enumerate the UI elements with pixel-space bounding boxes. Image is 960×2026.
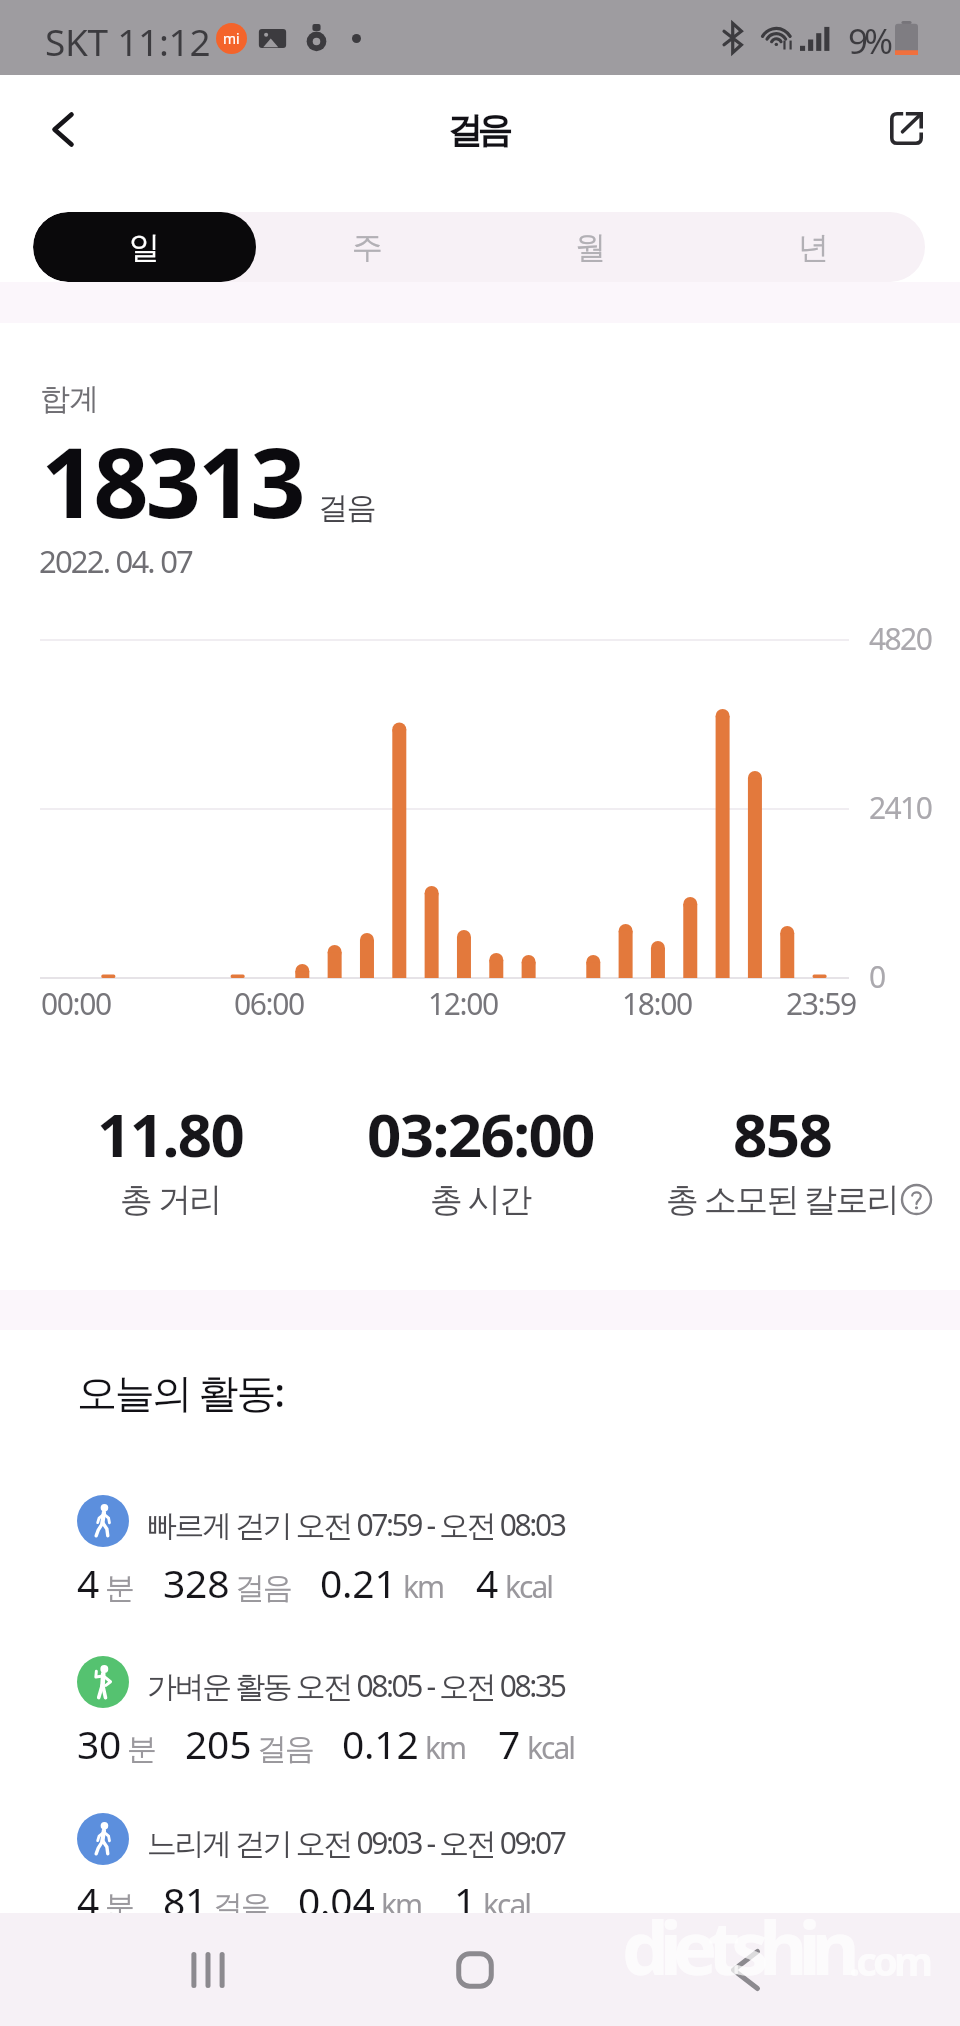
button[interactable]: Recent apps — [148, 1928, 268, 2012]
staticText: 03:26:00 — [367, 1093, 594, 1175]
staticText: 월 — [575, 228, 606, 267]
staticText: 0.21 — [320, 1556, 397, 1609]
staticText: 81 — [163, 1874, 208, 1927]
staticText: 걸음 — [450, 108, 510, 152]
staticText: 오늘의 활동: — [77, 1364, 283, 1419]
staticText: 328 — [163, 1556, 230, 1609]
button[interactable]: 일 — [33, 212, 256, 282]
staticText: 0.12 — [342, 1717, 419, 1770]
staticText: 9% — [848, 17, 890, 65]
staticText: 205 — [185, 1717, 252, 1770]
staticText: 12:00 — [428, 983, 498, 1024]
staticText: 4820 — [869, 618, 932, 659]
staticText: 년 — [798, 228, 829, 267]
staticText: 빠르게 걷기 오전 07:59 - 오전 08:03 — [147, 1504, 565, 1545]
staticText: 30 — [77, 1717, 122, 1770]
staticText: 7 — [498, 1717, 521, 1770]
staticText: 걸음 — [258, 1730, 314, 1768]
button[interactable]: Share — [874, 96, 938, 160]
staticText: 0.04 — [298, 1874, 375, 1927]
staticText: 합계 — [40, 380, 99, 418]
button[interactable]: 가벼운 활동 오전 08:05 - 오전 08:35 — [0, 1656, 960, 1770]
button[interactable]: 주 — [256, 212, 479, 282]
button[interactable]: Back — [31, 97, 95, 161]
staticText: 총 소모된 칼로리 — [666, 1176, 898, 1221]
staticText: km — [425, 1727, 466, 1768]
staticText: kcal — [505, 1566, 552, 1607]
button[interactable]: 년 — [702, 212, 925, 282]
staticText: 분 — [106, 1887, 134, 1925]
staticText: 0 — [869, 956, 885, 997]
staticText: 총 거리 — [120, 1176, 221, 1221]
staticText: dietshin — [622, 1896, 851, 1997]
staticText: kcal — [483, 1884, 530, 1925]
staticText: 00:00 — [41, 983, 111, 1024]
staticText: .com — [849, 1933, 929, 1987]
staticText: 1 — [454, 1874, 477, 1927]
staticText: 분 — [106, 1569, 134, 1607]
staticText: 가벼운 활동 오전 08:05 - 오전 08:35 — [147, 1665, 565, 1706]
button[interactable]: Home — [415, 1928, 535, 2012]
staticText: 4 — [77, 1556, 100, 1609]
staticText: kcal — [527, 1727, 574, 1768]
button[interactable]: 월 — [479, 212, 702, 282]
staticText: 23:59 — [786, 983, 856, 1024]
staticText: km — [381, 1884, 422, 1925]
staticText: 4 — [476, 1556, 499, 1609]
staticText: 18:00 — [622, 983, 692, 1024]
staticText: 4 — [77, 1874, 100, 1927]
button[interactable]: Back — [685, 1928, 805, 2012]
button[interactable]: 빠르게 걷기 오전 07:59 - 오전 08:03 — [0, 1495, 960, 1609]
staticText: 느리게 걷기 오전 09:03 - 오전 09:07 — [147, 1822, 565, 1863]
staticText: 858 — [733, 1093, 832, 1175]
staticText: 걸음 — [214, 1887, 270, 1925]
staticText: 11.80 — [97, 1093, 244, 1175]
button[interactable]: 느리게 걷기 오전 09:03 - 오전 09:07 — [0, 1813, 960, 1927]
staticText: 2022. 04. 07 — [39, 540, 192, 582]
staticText: SKT 11:12 — [45, 16, 211, 66]
staticText: 총 시간 — [430, 1176, 531, 1221]
staticText: km — [403, 1566, 444, 1607]
staticText: 분 — [128, 1730, 156, 1768]
staticText: mi — [223, 29, 240, 48]
staticText: 2410 — [869, 787, 932, 828]
staticText: 일 — [129, 228, 160, 267]
staticText: 18313 — [41, 414, 303, 546]
staticText: 주 — [352, 228, 383, 267]
staticText: 걸음 — [236, 1569, 292, 1607]
staticText: 걸음 — [319, 489, 376, 527]
staticText: 06:00 — [234, 983, 304, 1024]
